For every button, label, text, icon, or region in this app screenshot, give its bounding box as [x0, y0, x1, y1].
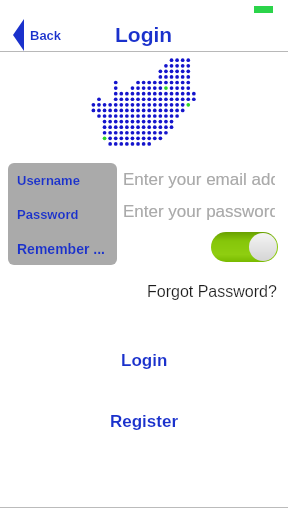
staticText: Back — [30, 28, 62, 43]
staticText: Login — [115, 23, 173, 46]
button[interactable]: Username — [17, 173, 80, 188]
staticText: Register — [110, 412, 179, 431]
button[interactable]: Register — [0, 409, 288, 433]
button[interactable]: Back — [9, 17, 66, 53]
button[interactable]: Login — [0, 348, 288, 372]
button[interactable]: Remember me toggle — [211, 232, 278, 262]
button[interactable]: Enter your password — [123, 202, 275, 221]
button[interactable]: Password — [17, 207, 79, 222]
button[interactable]: Enter your email address — [123, 170, 275, 189]
button[interactable]: Forgot Password? — [147, 283, 277, 301]
staticText: Login — [121, 351, 168, 370]
button[interactable]: Remember ... — [17, 241, 105, 257]
